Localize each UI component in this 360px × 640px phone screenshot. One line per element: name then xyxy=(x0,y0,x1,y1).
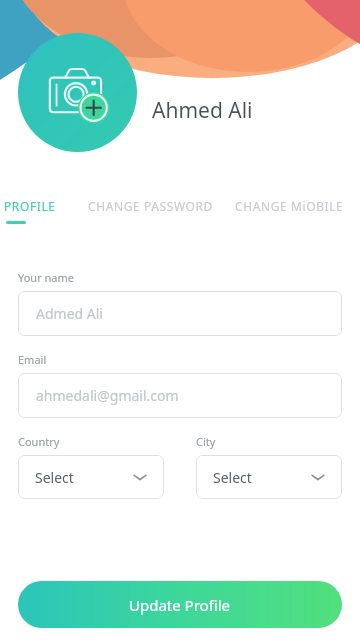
staticText: CHANGE MiOBILE xyxy=(235,198,344,214)
button[interactable]: CHANGE MiOBILE xyxy=(235,198,344,214)
staticText: PROFILE xyxy=(4,198,56,214)
button[interactable]: Select xyxy=(196,455,342,499)
staticText: City xyxy=(196,434,216,449)
staticText: CHANGE PASSWORD xyxy=(88,198,213,214)
button[interactable]: CHANGE PASSWORD xyxy=(88,198,213,214)
staticText: Update Profile xyxy=(129,595,231,615)
staticText: Country xyxy=(18,434,60,449)
staticText: Select xyxy=(213,468,252,487)
button[interactable]: PROFILE xyxy=(2,198,58,224)
staticText: Your name xyxy=(18,270,74,285)
staticText: Ahmed Ali xyxy=(152,96,253,125)
staticText: Select xyxy=(35,468,74,487)
staticText: Admed Ali xyxy=(36,304,103,323)
button[interactable]: Update Profile xyxy=(18,581,342,628)
button[interactable]: ahmedali@gmail.com xyxy=(18,373,342,418)
staticText: ahmedali@gmail.com xyxy=(36,386,179,405)
staticText: Email xyxy=(18,352,47,367)
button[interactable]: Select xyxy=(18,455,164,499)
button[interactable]: Change profile photo xyxy=(18,33,137,152)
button[interactable]: Admed Ali xyxy=(18,291,342,336)
